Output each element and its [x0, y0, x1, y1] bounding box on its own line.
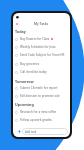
staticText: Tomorrow [15, 79, 34, 84]
button[interactable]: Profile [14, 21, 19, 26]
button[interactable]: Buy groceries [13, 61, 70, 67]
staticText: Today [15, 29, 26, 34]
staticText: Weekly Schedule for Joice [20, 45, 56, 49]
button[interactable]: Research for a new coffee [13, 109, 70, 115]
button[interactable]: Weekly Schedule for Joice [13, 44, 70, 50]
staticText: Call checklist today [20, 70, 47, 74]
button[interactable]: Call checklist today [13, 69, 70, 75]
staticText: Follow up work grades [20, 118, 52, 122]
staticText: Submit Clientele for report [20, 86, 58, 90]
staticText: Buy flowers for Clara [20, 37, 50, 41]
staticText: Add task [25, 130, 37, 134]
button[interactable]: Assistant [17, 129, 21, 133]
staticText: Upcoming [15, 102, 34, 107]
button[interactable]: Add task [22, 128, 68, 135]
button[interactable]: Fall decision to promote site [13, 93, 70, 99]
staticText: Fall decision to promote site [20, 94, 60, 98]
button[interactable]: Send Code Subject for Team HR [13, 52, 70, 58]
staticText: Research for a new coffee [20, 110, 57, 114]
staticText: Send Code Subject for Team HR [20, 53, 65, 57]
staticText: Buy groceries [20, 62, 40, 66]
button[interactable]: Buy flowers for Clara [13, 36, 70, 42]
button[interactable]: Submit Clientele for report [13, 85, 70, 91]
staticText: My Tasks [34, 21, 49, 25]
button[interactable]: Follow up work grades [13, 117, 70, 123]
